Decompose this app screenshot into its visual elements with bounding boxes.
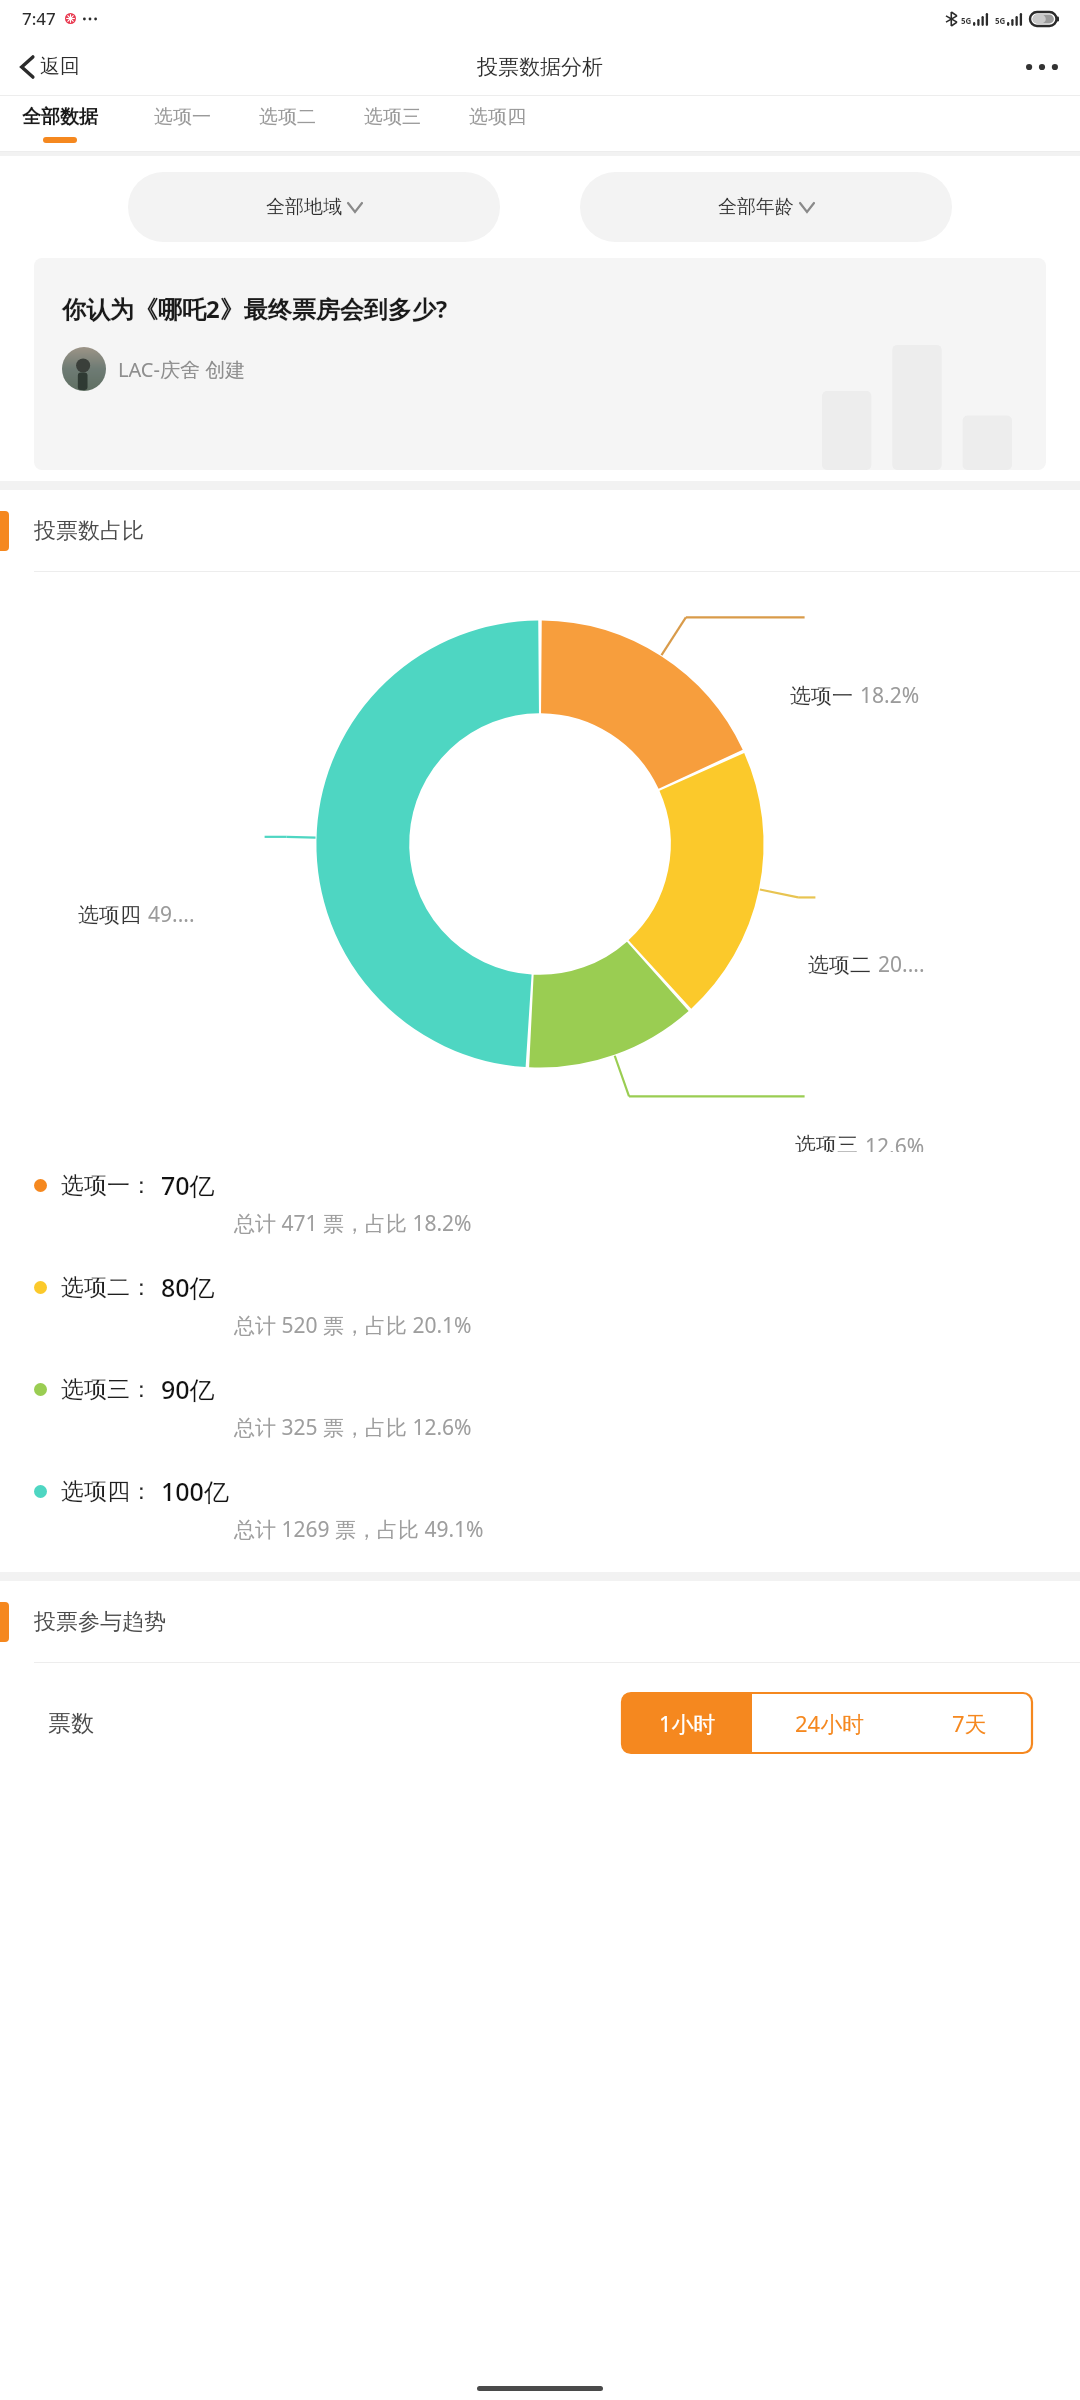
staticText: 选项一 [154, 105, 211, 129]
button[interactable]: 选项二 [235, 96, 340, 137]
staticText: 总计 1269 票，占比 49.1% [234, 1515, 484, 1544]
button[interactable]: 1小时 [622, 1693, 752, 1753]
staticText: 全部数据 [22, 105, 98, 129]
staticText: 投票数占比 [34, 517, 144, 545]
button[interactable]: 选项三 [340, 96, 445, 137]
staticText: 20.... [878, 950, 925, 979]
staticText: LAC-庆舍 创建 [118, 356, 246, 383]
button[interactable]: 24小时 [752, 1693, 907, 1753]
staticText: 选项四： [61, 1477, 153, 1506]
staticText: 投票参与趋势 [34, 1608, 166, 1636]
staticText: 5G [961, 15, 972, 26]
staticText: 选项三： [61, 1375, 153, 1404]
staticText: 100亿 [161, 1474, 229, 1508]
staticText: 12.6% [865, 1132, 925, 1152]
button[interactable]: 选项一 [130, 96, 235, 137]
staticText: 7:47 [22, 7, 56, 30]
staticText: 选项二： [61, 1273, 153, 1302]
staticText: 5G [995, 15, 1006, 26]
staticText: 选项一： [61, 1171, 153, 1200]
staticText: 70亿 [161, 1168, 215, 1202]
button[interactable]: 全部地域 [128, 172, 500, 242]
staticText: 投票数据分析 [477, 54, 603, 80]
button[interactable]: 选项三： [0, 1356, 1080, 1458]
staticText: 80亿 [161, 1270, 215, 1304]
staticText: 7天 [952, 1708, 987, 1738]
staticText: 选项一 [790, 683, 853, 709]
staticText: 选项四 [469, 105, 526, 129]
staticText: 全部地域 [266, 195, 342, 219]
staticText: 选项三 [364, 105, 421, 129]
button[interactable]: 选项一： [0, 1152, 1080, 1254]
staticText: 选项四 [78, 902, 141, 928]
staticText: 全部年龄 [718, 195, 794, 219]
staticText: 你认为《哪吒2》最终票房会到多少? [62, 292, 448, 325]
staticText: 24小时 [795, 1708, 865, 1738]
button[interactable]: 选项二： [0, 1254, 1080, 1356]
button[interactable]: 7天 [907, 1693, 1032, 1753]
staticText: 18.2% [860, 681, 920, 710]
staticText: 总计 520 票，占比 20.1% [234, 1311, 472, 1340]
staticText: 49.... [148, 900, 195, 929]
staticText: 90亿 [161, 1372, 215, 1406]
button[interactable]: 返回 [0, 46, 92, 87]
button[interactable]: 选项四 [445, 96, 550, 137]
button[interactable]: More options [1004, 48, 1080, 86]
staticText: 选项二 [808, 952, 871, 978]
staticText: 选项三 [795, 1132, 858, 1152]
staticText: 总计 471 票，占比 18.2% [234, 1209, 472, 1238]
staticText: 1小时 [659, 1708, 716, 1738]
staticText: 票数 [48, 1709, 94, 1738]
button[interactable]: 全部数据 [22, 96, 98, 143]
staticText: 返回 [40, 54, 80, 79]
staticText: 选项二 [259, 105, 316, 129]
button[interactable]: 你认为《哪吒2》最终票房会到多少? [34, 258, 1046, 470]
button[interactable]: 全部年龄 [580, 172, 952, 242]
staticText: 总计 325 票，占比 12.6% [234, 1413, 472, 1442]
button[interactable]: 选项四： [0, 1458, 1080, 1560]
